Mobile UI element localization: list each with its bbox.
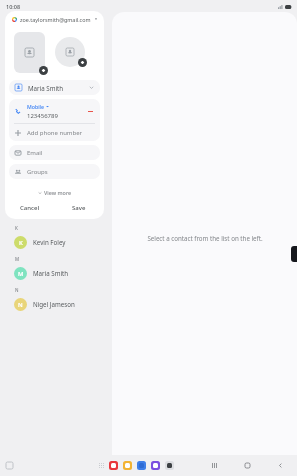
button[interactable]: Gmail — [109, 461, 118, 470]
button[interactable]: Groups — [9, 164, 100, 179]
staticText: Email — [27, 149, 43, 157]
button[interactable]: Add photo — [14, 32, 45, 73]
staticText: Maria Smith — [28, 84, 64, 92]
staticText: Maria Smith — [33, 269, 69, 277]
button[interactable]: K — [0, 231, 112, 253]
staticText: 10:08 — [6, 3, 21, 10]
staticText: Cancel — [20, 204, 40, 212]
button[interactable]: All apps — [99, 463, 104, 468]
button[interactable]: Add — [78, 58, 87, 67]
staticText: Add phone number — [27, 129, 83, 137]
button[interactable]: Recents — [210, 461, 219, 470]
staticText: M — [18, 270, 24, 278]
button[interactable]: M — [0, 262, 112, 284]
button[interactable]: Add — [39, 66, 48, 75]
staticText: K — [19, 239, 23, 247]
button[interactable]: View more — [5, 186, 104, 199]
staticText: Save — [72, 204, 86, 212]
staticText: 123456789 — [27, 112, 58, 120]
button[interactable]: Back — [276, 461, 285, 470]
button[interactable]: Assistant — [6, 462, 13, 469]
button[interactable]: Maria Smith — [9, 80, 100, 95]
staticText: Kevin Foley — [33, 238, 66, 246]
staticText: N — [15, 287, 19, 293]
button[interactable]: Add phone number — [9, 124, 100, 141]
staticText: M — [15, 256, 20, 262]
button[interactable]: Keep — [123, 461, 132, 470]
staticText: zoe.taylorsmith@gmail.com — [20, 16, 91, 23]
button[interactable]: Save — [54, 199, 104, 217]
button[interactable]: Camera — [165, 461, 174, 470]
staticText: Groups — [27, 168, 48, 176]
button[interactable]: N — [0, 293, 112, 315]
button[interactable]: zoe.taylorsmith@gmail.com — [5, 11, 104, 27]
staticText: Mobile — [27, 103, 44, 110]
staticText: K — [15, 225, 18, 231]
button[interactable]: Remove phone number — [86, 107, 94, 115]
staticText: N — [18, 301, 23, 309]
button[interactable]: Mobile — [9, 99, 100, 123]
staticText: Select a contact from the list on the le… — [147, 234, 263, 242]
button[interactable]: Chrome — [137, 461, 146, 470]
staticText: Nigel Jameson — [33, 300, 75, 308]
staticText: View more — [44, 189, 72, 196]
button[interactable]: Email — [9, 145, 100, 160]
button[interactable]: Photos — [151, 461, 160, 470]
button[interactable]: Cancel — [5, 199, 54, 217]
button[interactable]: Home — [243, 461, 252, 470]
button[interactable]: Add profile photo — [55, 37, 85, 67]
